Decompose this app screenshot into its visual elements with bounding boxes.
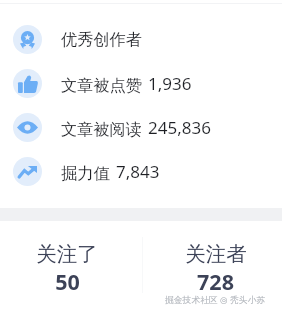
button[interactable]: 关注者 [145, 221, 282, 309]
staticText: 7,843 [116, 160, 160, 183]
staticText: 掘金技术社区 ◎ 秃头小苏 [165, 294, 266, 306]
staticText: 728 [197, 267, 234, 296]
staticText: 文章被点赞 [61, 75, 142, 95]
staticText: 文章被阅读 [61, 119, 142, 139]
button[interactable]: 文章被阅读 [0, 105, 282, 149]
button[interactable]: 掘力值 [0, 149, 282, 193]
button[interactable]: 关注了 [0, 221, 137, 309]
staticText: 245,836 [148, 116, 211, 139]
staticText: 关注了 [36, 241, 98, 267]
staticText: 优秀创作者 [61, 29, 142, 49]
button[interactable]: 优秀创作者 [0, 17, 282, 61]
staticText: 1,936 [148, 72, 192, 95]
staticText: 掘力值 [61, 163, 110, 183]
staticText: 50 [55, 267, 80, 296]
staticText: 关注者 [185, 241, 247, 267]
button[interactable]: 文章被点赞 [0, 61, 282, 105]
